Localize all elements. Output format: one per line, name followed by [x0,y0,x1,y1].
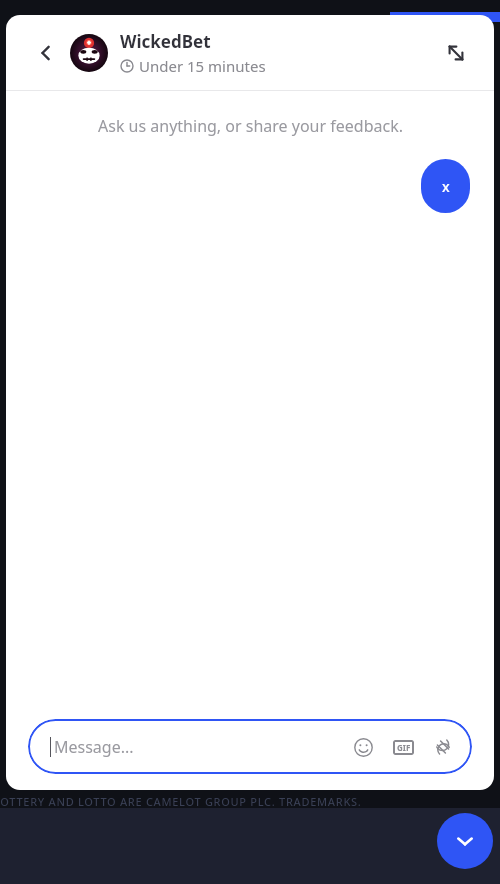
staticText: LOTTERY AND LOTTO ARE CAMELOT GROUP PLC.… [0,794,362,809]
staticText: WickedBet [120,30,211,53]
staticText: Ask us anything, or share your feedback. [98,115,403,137]
button[interactable]: Message... [28,719,472,774]
button[interactable]: Back [26,33,66,73]
button[interactable]: Expand [436,33,476,73]
button[interactable]: Attach file [426,730,460,764]
button[interactable]: Close [421,159,470,213]
staticText: Under 15 minutes [139,56,266,76]
button[interactable]: Collapse chat [437,813,493,869]
staticText: GIF [397,742,411,753]
button[interactable]: WickedBet avatar [70,34,108,72]
staticText: x [442,177,450,196]
staticText: Message... [54,736,134,758]
button[interactable]: GIF [386,730,420,764]
button[interactable]: Emoji [346,730,380,764]
